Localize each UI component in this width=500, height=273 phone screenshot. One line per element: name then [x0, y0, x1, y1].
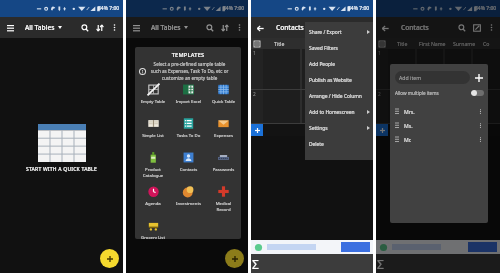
staticText: Share / Export — [309, 29, 342, 36]
staticText: Select a pre-defined sample table such a… — [148, 61, 231, 81]
button[interactable]: Delete — [305, 136, 373, 152]
button[interactable]: Back — [252, 20, 268, 36]
staticText: Quick Table — [210, 98, 237, 104]
staticText: Expenses — [210, 132, 237, 138]
staticText: Contacts — [276, 23, 304, 32]
button[interactable]: More options — [107, 20, 122, 35]
staticText: Simple List — [139, 132, 167, 138]
button[interactable]: More options — [232, 20, 247, 35]
button[interactable]: All Tables — [20, 20, 63, 35]
staticText: Mrs. — [404, 108, 415, 115]
staticText: Allow multiple items — [395, 90, 439, 96]
button[interactable]: Saved Filters — [305, 40, 373, 56]
staticText: Saved Filters — [309, 45, 338, 52]
staticText: Product Catalogue — [139, 166, 167, 178]
staticText: Tasks To Do — [175, 132, 202, 138]
staticText: Surname — [453, 40, 476, 47]
button[interactable]: Open navigation drawer — [2, 20, 18, 36]
button[interactable]: Publish as Website — [305, 72, 373, 88]
button[interactable]: Ms. — [395, 118, 484, 132]
staticText: Add to Homescreen — [309, 109, 355, 116]
button[interactable]: Simple List — [135, 116, 171, 138]
staticText: 84% 7:00 — [223, 5, 245, 12]
button[interactable]: Edit table — [342, 20, 357, 35]
staticText: Σ — [252, 256, 259, 272]
staticText: Add item — [399, 74, 422, 81]
staticText: Contacts — [401, 23, 429, 32]
button[interactable]: Add row — [376, 124, 388, 136]
button[interactable]: Add — [473, 72, 484, 83]
button[interactable]: Expenses — [206, 116, 241, 138]
staticText: START WITH A QUICK TABLE — [26, 166, 97, 173]
staticText: Add People — [309, 61, 336, 68]
button[interactable]: More options — [484, 20, 499, 35]
button[interactable]: Grocery List — [135, 218, 171, 239]
button[interactable]: Medical Record — [206, 184, 241, 212]
button[interactable]: Passwords — [206, 150, 241, 172]
staticText: 84% 7:00 — [348, 5, 370, 12]
button[interactable]: Product Catalogue — [135, 150, 171, 178]
staticText: 2 — [253, 91, 256, 98]
staticText: All Tables — [151, 23, 181, 32]
staticText: 2 — [378, 91, 381, 98]
button[interactable]: Investments — [171, 184, 206, 206]
button[interactable]: Item options — [476, 135, 484, 143]
staticText: Σ — [377, 256, 384, 272]
button[interactable]: Empty Table — [135, 82, 171, 104]
staticText: 1 — [378, 50, 381, 57]
button[interactable]: Add — [225, 249, 244, 268]
staticText: TEMPLATES — [135, 51, 241, 59]
staticText: Empty Table — [139, 98, 167, 104]
button[interactable]: Item options — [476, 107, 484, 115]
button[interactable]: Search — [77, 20, 92, 35]
button[interactable]: Sort — [217, 20, 232, 35]
button[interactable]: All Tables — [146, 20, 189, 35]
button[interactable]: Arrange / Hide Column — [305, 88, 373, 104]
button[interactable]: Tasks To Do — [171, 116, 206, 138]
button[interactable]: Add item — [395, 71, 470, 84]
staticText: Contacts — [175, 166, 202, 172]
button[interactable]: Mrs. — [395, 104, 484, 118]
staticText: Import Excel — [175, 98, 202, 104]
button[interactable]: Share / Export — [305, 24, 373, 40]
button[interactable]: Mr. — [395, 132, 484, 146]
button[interactable]: Contacts — [171, 150, 206, 172]
staticText: Agenda — [139, 200, 167, 206]
button[interactable]: Import Excel — [171, 82, 206, 104]
staticText: Passwords — [210, 166, 237, 172]
button[interactable]: Back — [377, 20, 393, 36]
button[interactable]: Add People — [305, 56, 373, 72]
button[interactable]: Allow multiple items — [395, 88, 484, 98]
staticText: Delete — [309, 141, 324, 148]
staticText: Mr. — [404, 136, 412, 143]
staticText: Grocery List — [139, 234, 167, 239]
button[interactable]: Edit table — [469, 20, 484, 35]
staticText: Arrange / Hide Column — [309, 93, 362, 100]
button[interactable]: Open navigation drawer — [128, 20, 144, 36]
button[interactable]: Add row — [251, 124, 263, 136]
staticText: Ms. — [404, 122, 413, 129]
staticText: Title — [397, 40, 408, 47]
staticText: 84% 7:00 — [475, 5, 497, 12]
button[interactable]: Add to Homescreen — [305, 104, 373, 120]
staticText: First Name — [419, 40, 446, 47]
button[interactable]: Search — [202, 20, 217, 35]
button[interactable]: Sort — [92, 20, 107, 35]
button[interactable]: Agenda — [135, 184, 171, 206]
staticText: Investments — [175, 200, 202, 206]
button[interactable]: Quick Table — [206, 82, 241, 104]
button[interactable]: More options — [357, 20, 372, 35]
button[interactable]: Search — [327, 20, 342, 35]
staticText: Publish as Website — [309, 77, 352, 84]
button[interactable]: Settings — [305, 120, 373, 136]
staticText: Settings — [309, 125, 328, 132]
button[interactable]: START WITH A QUICK TABLE — [26, 124, 97, 173]
staticText: All Tables — [25, 23, 55, 32]
staticText: 84% 7:00 — [98, 5, 120, 12]
staticText: Co — [483, 40, 490, 47]
button[interactable]: Search — [454, 20, 469, 35]
button[interactable]: Item options — [476, 121, 484, 129]
staticText: 1 — [253, 50, 256, 57]
button[interactable]: Add — [100, 249, 119, 268]
